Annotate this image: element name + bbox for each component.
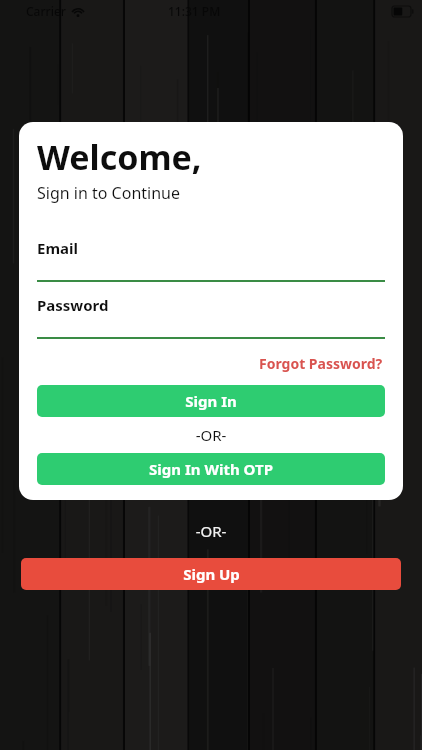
staticText: Welcome, <box>37 134 202 180</box>
button[interactable]: Sign In With OTP <box>37 453 385 485</box>
staticText: Sign In <box>185 391 237 411</box>
button[interactable]: Sign Up <box>21 558 401 590</box>
button[interactable]: Sign In <box>37 385 385 417</box>
staticText: -OR- <box>37 425 385 445</box>
staticText: -OR- <box>0 521 422 541</box>
staticText: 11:31 PM <box>168 3 221 19</box>
staticText: Carrier <box>26 3 66 19</box>
staticText: Email <box>37 238 78 258</box>
staticText: Password <box>37 295 109 315</box>
staticText: Sign In With OTP <box>149 459 273 479</box>
staticText: Sign Up <box>183 564 240 584</box>
button[interactable]: Forgot Password? <box>257 353 385 374</box>
staticText: Sign in to Continue <box>37 182 180 204</box>
staticText: Forgot Password? <box>259 354 383 373</box>
